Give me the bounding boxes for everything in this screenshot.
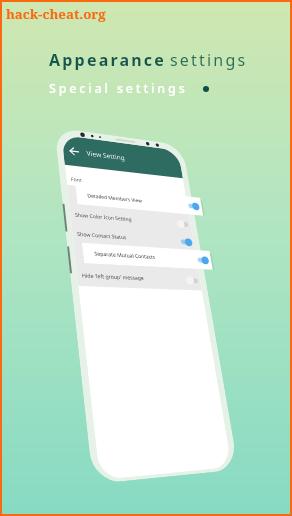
staticText: Detailed Members View	[87, 192, 143, 204]
button[interactable]: Separate Mutual Contacts	[82, 243, 213, 270]
staticText: View Setting	[86, 149, 125, 162]
button[interactable]: Hide 'left group' message	[76, 265, 202, 290]
button[interactable]: Show Color Icon Setting	[69, 204, 192, 234]
staticText: Show Contact Status	[77, 230, 127, 241]
staticText: Font	[70, 176, 82, 184]
staticText: Special settings	[49, 80, 188, 97]
staticText: settings	[170, 49, 248, 71]
staticText: Hide 'left group' message	[81, 272, 144, 282]
button[interactable]: Back	[66, 144, 82, 159]
button[interactable]: Show Contact Status	[71, 224, 195, 252]
staticText: hack-cheat.org	[6, 5, 106, 23]
staticText: Appearance	[49, 49, 167, 71]
staticText: Separate Mutual Contacts	[94, 250, 156, 261]
staticText: Show Color Icon Setting	[74, 211, 132, 223]
button[interactable]: Detailed Members View	[75, 185, 203, 216]
